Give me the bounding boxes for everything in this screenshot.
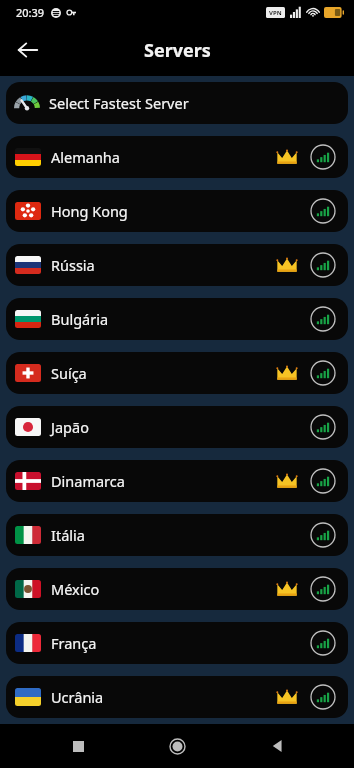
button[interactable]: México [6,568,348,610]
button[interactable]: Select Fastest Server [6,82,348,124]
staticText: México [51,579,276,599]
button[interactable]: Signal strength [309,683,337,711]
staticText: Hong Kong [51,201,309,221]
button[interactable]: Bulgária [6,298,348,340]
button[interactable]: França [6,622,348,664]
button[interactable]: Itália [6,514,348,556]
staticText: Japão [51,417,309,437]
staticText: Alemanha [51,147,276,167]
button[interactable]: Back [8,30,48,70]
button[interactable]: Back [255,724,299,768]
button[interactable]: Signal strength [309,467,337,495]
button[interactable]: Signal strength [309,575,337,603]
staticText: Servers [144,38,211,63]
button[interactable]: Dinamarca [6,460,348,502]
staticText: Itália [51,525,309,545]
staticText: Dinamarca [51,471,276,491]
button[interactable]: Rússia [6,244,348,286]
button[interactable]: Alemanha [6,136,348,178]
button[interactable]: Signal strength [309,305,337,333]
button[interactable]: Japão [6,406,348,448]
button[interactable]: Signal strength [309,197,337,225]
staticText: França [51,633,309,653]
button[interactable]: Suíça [6,352,348,394]
button[interactable]: Signal strength [309,251,337,279]
staticText: Rússia [51,255,276,275]
button[interactable]: Signal strength [309,359,337,387]
staticText: VPN [269,9,282,17]
button[interactable]: Hong Kong [6,190,348,232]
staticText: 20:39 [16,5,45,20]
staticText: Bulgária [51,309,309,329]
button[interactable]: Ucrânia [6,676,348,718]
button[interactable]: Signal strength [309,521,337,549]
staticText: Suíça [51,363,276,383]
button[interactable]: Signal strength [309,629,337,657]
staticText: Select Fastest Server [49,93,189,113]
button[interactable]: Signal strength [309,413,337,441]
staticText: Ucrânia [51,687,276,707]
button[interactable]: Home [155,724,199,768]
button[interactable]: Recent apps [56,724,100,768]
button[interactable]: Signal strength [309,143,337,171]
